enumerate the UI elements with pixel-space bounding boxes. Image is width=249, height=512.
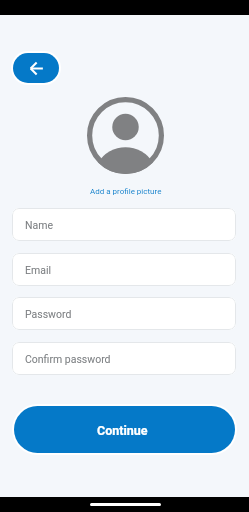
staticText: Email <box>25 264 51 276</box>
staticText: Continue <box>97 423 148 438</box>
button[interactable]: Continue <box>12 404 237 455</box>
button[interactable]: Password <box>12 297 236 330</box>
staticText: Password <box>25 308 72 320</box>
staticText: Name <box>25 219 53 231</box>
button[interactable]: Name <box>12 208 236 241</box>
staticText: Add a profile picture <box>90 187 162 196</box>
button[interactable]: Back <box>11 51 61 85</box>
button[interactable]: Confirm password <box>12 342 236 375</box>
staticText: Confirm password <box>25 353 111 365</box>
button[interactable]: Add a profile picture <box>88 186 164 197</box>
button[interactable]: Email <box>12 253 236 286</box>
